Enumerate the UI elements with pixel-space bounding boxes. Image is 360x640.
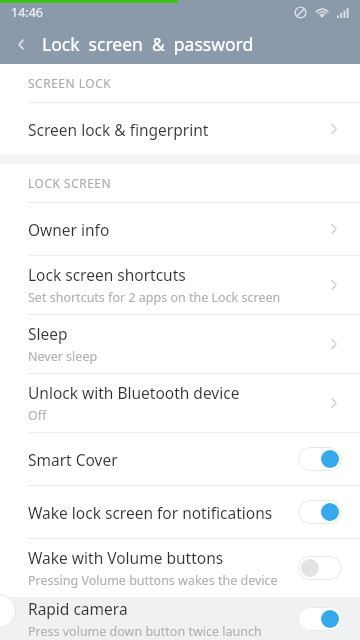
staticText: 14:46 xyxy=(11,4,43,21)
button[interactable]: Wake lock screen for notifications xyxy=(0,486,360,538)
button[interactable]: Unlock with Bluetooth device xyxy=(0,374,360,432)
staticText: Press volume down button twice launch ca… xyxy=(28,623,298,640)
button[interactable]: Screen lock & fingerprint xyxy=(0,103,360,155)
staticText: Unlock with Bluetooth device xyxy=(28,382,240,403)
button[interactable]: Smart Cover xyxy=(0,433,360,485)
staticText: LOCK SCREEN xyxy=(28,175,112,191)
other: Fast scroll xyxy=(0,594,16,628)
staticText: Lock screen & password xyxy=(42,32,254,56)
button[interactable]: Back xyxy=(0,24,42,64)
staticText: Screen lock & fingerprint xyxy=(28,119,209,140)
staticText: Smart Cover xyxy=(28,449,118,470)
staticText: Wake lock screen for notifications xyxy=(28,502,273,523)
staticText: Sleep xyxy=(28,323,68,344)
button[interactable]: Sleep xyxy=(0,315,360,373)
staticText: Never sleep xyxy=(28,348,98,365)
staticText: Wake with Volume buttons xyxy=(28,547,224,568)
staticText: Lock screen shortcuts xyxy=(28,264,186,285)
staticText: Set shortcuts for 2 apps on the Lock scr… xyxy=(28,289,281,306)
staticText: Rapid camera xyxy=(28,598,128,619)
staticText: Pressing Volume buttons wakes the device xyxy=(28,572,278,589)
staticText: Off xyxy=(28,407,47,424)
staticText: SCREEN LOCK xyxy=(28,75,112,91)
button[interactable]: Rapid camera xyxy=(0,597,360,640)
button[interactable]: Lock screen shortcuts xyxy=(0,256,360,314)
button[interactable]: Wake with Volume buttons xyxy=(0,539,360,597)
button[interactable]: Owner info xyxy=(0,203,360,255)
staticText: Owner info xyxy=(28,219,110,240)
